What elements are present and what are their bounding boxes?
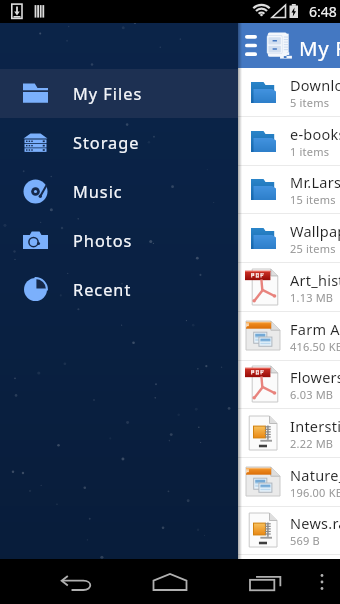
button[interactable]: My Files xyxy=(0,69,238,118)
staticText: Downloads xyxy=(290,75,340,95)
staticText: 6:48 xyxy=(309,2,337,21)
staticText: 196.00 KB xyxy=(290,485,340,500)
staticText: 1.13 MB xyxy=(290,290,334,305)
button[interactable]: Open navigation drawer xyxy=(238,23,264,68)
button[interactable]: Recent apps xyxy=(245,559,285,604)
staticText: 25 items xyxy=(290,241,336,256)
staticText: Mr.Larson xyxy=(290,172,340,192)
button[interactable]: Downloads xyxy=(238,68,340,117)
staticText: 6.03 MB xyxy=(290,387,334,402)
staticText: News.rar xyxy=(290,513,340,533)
button[interactable]: More options xyxy=(304,559,340,604)
button[interactable]: Mr.Larson xyxy=(238,165,340,214)
button[interactable]: Wallpapers xyxy=(238,214,340,263)
button[interactable]: Home xyxy=(150,559,190,604)
staticText: Music xyxy=(73,181,123,203)
button[interactable]: Photos xyxy=(0,216,238,265)
staticText: Flowers.pdf xyxy=(290,367,340,387)
staticText: 2.22 MB xyxy=(290,436,334,451)
staticText: e-books xyxy=(290,124,340,144)
staticText: 15 items xyxy=(290,192,336,207)
staticText: 569 B xyxy=(290,533,320,548)
staticText: Interstingfacts.zip xyxy=(290,416,340,436)
staticText: Art_history.pdf xyxy=(290,270,340,290)
staticText: My Files xyxy=(73,83,143,105)
button[interactable]: Storage xyxy=(0,118,238,167)
staticText: 416.50 KB xyxy=(290,339,340,354)
button[interactable]: Recent xyxy=(0,265,238,314)
staticText: 1 items xyxy=(290,144,330,159)
button[interactable]: Back xyxy=(56,559,96,604)
staticText: Storage xyxy=(73,132,140,154)
button[interactable]: Nature_pics.ppt xyxy=(238,458,340,507)
button[interactable]: Farm Animals.ppt xyxy=(238,312,340,361)
button[interactable]: e-books xyxy=(238,117,340,166)
button[interactable]: Art_history.pdf xyxy=(238,263,340,312)
staticText: Farm Animals.ppt xyxy=(290,319,340,339)
staticText: Nature_pics.ppt xyxy=(290,465,340,485)
staticText: Wallpapers xyxy=(290,221,340,241)
staticText: 5 items xyxy=(290,95,330,110)
button[interactable]: News.rar xyxy=(238,506,340,555)
staticText: Photos xyxy=(73,230,133,252)
staticText: My Files xyxy=(299,34,340,62)
button[interactable]: Interstingfacts.zip xyxy=(238,409,340,458)
button[interactable]: Music xyxy=(0,167,238,216)
button[interactable]: Flowers.pdf xyxy=(238,360,340,409)
staticText: Recent xyxy=(73,279,132,301)
